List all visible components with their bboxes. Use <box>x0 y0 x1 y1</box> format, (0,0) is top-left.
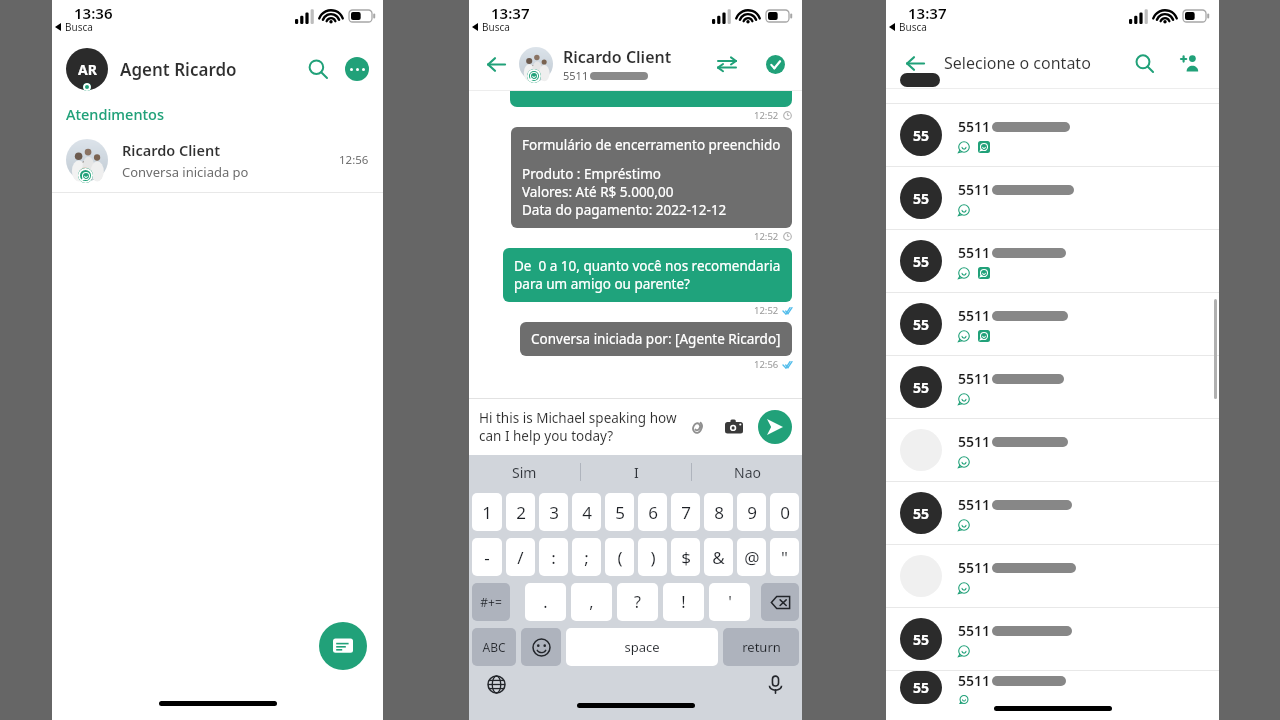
staticText: 8 <box>714 501 724 524</box>
button[interactable]: Attach file <box>682 413 710 441</box>
button[interactable]: 55 <box>886 293 1219 355</box>
staticText: ' <box>728 591 732 613</box>
button[interactable]: Change keyboard <box>483 675 509 694</box>
button[interactable]: 55 <box>886 482 1219 544</box>
staticText: para um amigo ou parente? <box>514 275 690 293</box>
staticText: Valores: Até R$ 5.000,00 <box>522 183 674 201</box>
button[interactable]: $ <box>671 538 700 576</box>
button[interactable]: More options <box>345 57 369 81</box>
staticText: Nao <box>734 463 761 482</box>
staticText: Agent Ricardo <box>120 58 301 81</box>
staticText: can I help you today? <box>479 427 614 445</box>
staticText: Conversa iniciada po <box>122 163 249 181</box>
button[interactable]: 5511 <box>886 419 1219 481</box>
staticText: 55 <box>913 630 930 649</box>
button[interactable]: " <box>770 538 799 576</box>
button[interactable]: 0 <box>770 493 799 531</box>
staticText: 4 <box>582 501 592 524</box>
button[interactable]: ; <box>572 538 601 576</box>
button[interactable]: 55 <box>886 104 1219 166</box>
staticText: I <box>634 463 639 482</box>
staticText: 55 <box>913 678 930 697</box>
button[interactable]: 55 <box>886 608 1219 670</box>
staticText: . <box>543 591 548 613</box>
staticText: 13:36 <box>74 3 113 23</box>
staticText: $ <box>681 546 691 569</box>
staticText: 5511 <box>958 369 991 388</box>
button[interactable]: Finish conversation <box>760 49 790 79</box>
button[interactable]: 5 <box>605 493 634 531</box>
staticText: Busca <box>482 20 510 34</box>
button[interactable]: 7 <box>671 493 700 531</box>
button[interactable]: 8 <box>704 493 733 531</box>
staticText: 6 <box>648 501 658 524</box>
staticText: 5511 <box>958 671 991 690</box>
button[interactable]: ) <box>638 538 667 576</box>
button[interactable]: Emoji <box>521 628 561 666</box>
button[interactable]: : <box>539 538 568 576</box>
staticText: AR <box>78 60 97 79</box>
button[interactable]: Back <box>900 48 930 78</box>
button[interactable]: Transfer <box>712 49 742 79</box>
button[interactable]: 9 <box>737 493 766 531</box>
button[interactable]: / <box>506 538 535 576</box>
staticText: 12:56 <box>339 152 369 168</box>
button[interactable]: . <box>525 583 566 621</box>
staticText: 55 <box>913 315 930 334</box>
button[interactable]: I <box>581 455 691 489</box>
button[interactable]: & <box>704 538 733 576</box>
button[interactable]: 55 <box>886 167 1219 229</box>
staticText: Selecione o contato <box>944 52 1129 74</box>
staticText: De 0 a 10, quanto você nos recomendaria <box>514 257 781 275</box>
button[interactable]: Ricardo Client <box>52 134 383 186</box>
button[interactable]: Camera <box>720 413 748 441</box>
staticText: 55 <box>913 504 930 523</box>
button[interactable]: 1 <box>472 493 502 531</box>
button[interactable]: ? <box>617 583 658 621</box>
button[interactable]: 6 <box>638 493 667 531</box>
button[interactable]: #+= <box>472 583 510 621</box>
button[interactable]: Backspace <box>761 583 799 621</box>
button[interactable]: ( <box>605 538 634 576</box>
button[interactable]: , <box>571 583 612 621</box>
button[interactable]: Sim <box>469 455 580 489</box>
staticText: 13:37 <box>491 3 530 23</box>
button[interactable]: Add contact <box>1175 48 1205 78</box>
staticText: 12:56 <box>754 358 779 371</box>
button[interactable]: Search <box>301 52 335 86</box>
staticText: & <box>712 546 725 569</box>
staticText: " <box>781 546 788 569</box>
staticText: 55 <box>913 252 930 271</box>
button[interactable]: ABC <box>472 628 516 666</box>
button[interactable]: @ <box>737 538 766 576</box>
button[interactable]: Dictation <box>762 675 788 694</box>
button[interactable]: space <box>566 628 718 666</box>
button[interactable]: Send <box>758 410 792 444</box>
staticText: - <box>484 546 490 569</box>
staticText: 13:37 <box>908 3 947 23</box>
button[interactable]: Back <box>481 49 511 79</box>
staticText: , <box>589 591 594 613</box>
button[interactable]: 5511 <box>886 545 1219 607</box>
button[interactable]: 55 <box>886 356 1219 418</box>
staticText: 55 <box>913 378 930 397</box>
button[interactable]: 2 <box>506 493 535 531</box>
staticText: / <box>517 546 524 569</box>
button[interactable]: 4 <box>572 493 601 531</box>
staticText: Formulário de encerramento preenchido <box>522 136 781 154</box>
staticText: ABC <box>482 639 506 655</box>
button[interactable]: Search <box>1129 48 1159 78</box>
button[interactable]: Nao <box>692 455 802 489</box>
staticText: 55 <box>913 189 930 208</box>
staticText: 5511 <box>958 180 991 199</box>
button[interactable]: return <box>723 628 799 666</box>
staticText: Busca <box>899 20 927 34</box>
button[interactable]: ' <box>709 583 750 621</box>
button[interactable]: New conversation <box>319 622 367 670</box>
button[interactable]: 55 <box>886 671 1219 704</box>
button[interactable]: ! <box>663 583 704 621</box>
staticText: space <box>624 638 660 656</box>
button[interactable]: 55 <box>886 230 1219 292</box>
button[interactable]: 3 <box>539 493 568 531</box>
button[interactable]: - <box>472 538 502 576</box>
